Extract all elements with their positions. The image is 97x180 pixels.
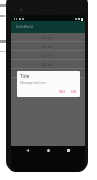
button[interactable]: Back (23, 146, 32, 155)
staticText: Message text here. (20, 81, 47, 85)
staticText: OK (71, 89, 77, 94)
button[interactable]: Button (11, 69, 85, 77)
button[interactable]: Recents (64, 146, 73, 155)
staticText: Button (42, 62, 54, 67)
staticText: HelloWorld (16, 25, 33, 29)
staticText: Title (20, 73, 30, 79)
staticText: Button (42, 44, 54, 49)
button[interactable]: NO (58, 89, 67, 94)
button[interactable]: Home (44, 146, 53, 155)
button[interactable]: OK (70, 89, 78, 94)
staticText: Button (42, 53, 54, 58)
staticText: NO (59, 89, 66, 94)
staticText: Button (42, 35, 54, 40)
